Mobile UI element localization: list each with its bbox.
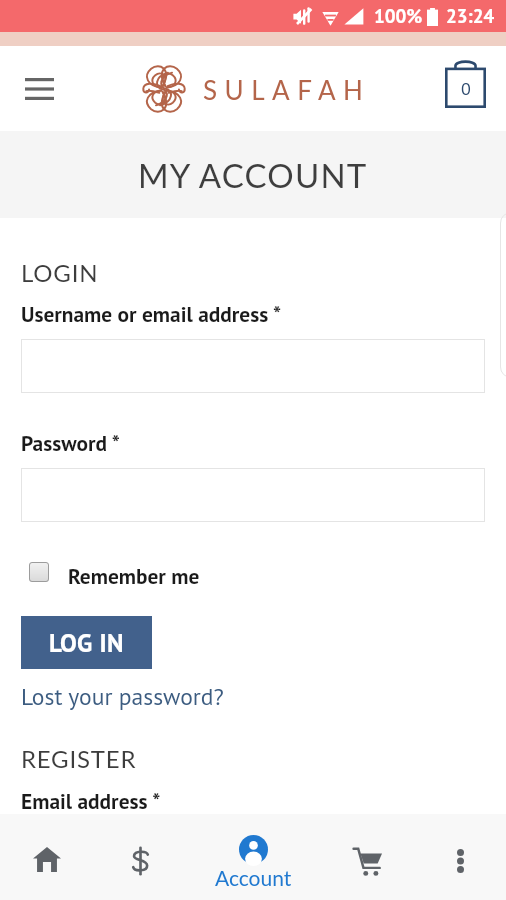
button[interactable] (21, 468, 485, 522)
staticText: Remember me (68, 562, 200, 590)
staticText: Email address * (21, 787, 161, 814)
button[interactable]: Account (203, 814, 304, 900)
button[interactable]: Menu (12, 62, 66, 116)
staticText: SULAFAH (203, 74, 371, 105)
staticText: Username or email address * (21, 300, 281, 328)
button[interactable]: Shopping cart (439, 58, 491, 110)
staticText: 23:24 (446, 4, 495, 29)
staticText: 100% (374, 4, 423, 29)
staticText: Password * (21, 429, 120, 457)
button[interactable]: LOG IN (21, 616, 152, 669)
button[interactable]: More options (405, 814, 506, 900)
button[interactable]: Deals (102, 814, 203, 900)
staticText: LOG IN (49, 627, 124, 659)
staticText: Account (215, 865, 292, 890)
button[interactable]: Home (0, 814, 102, 900)
staticText: 0 (461, 77, 471, 100)
staticText: MY ACCOUNT (138, 155, 368, 195)
staticText: LOGIN (21, 258, 99, 287)
button[interactable] (21, 339, 485, 393)
button[interactable]: Cart (304, 814, 405, 900)
staticText: REGISTER (21, 744, 137, 773)
button[interactable]: Lost your password? (21, 681, 224, 712)
button[interactable]: Remember me (21, 554, 200, 590)
